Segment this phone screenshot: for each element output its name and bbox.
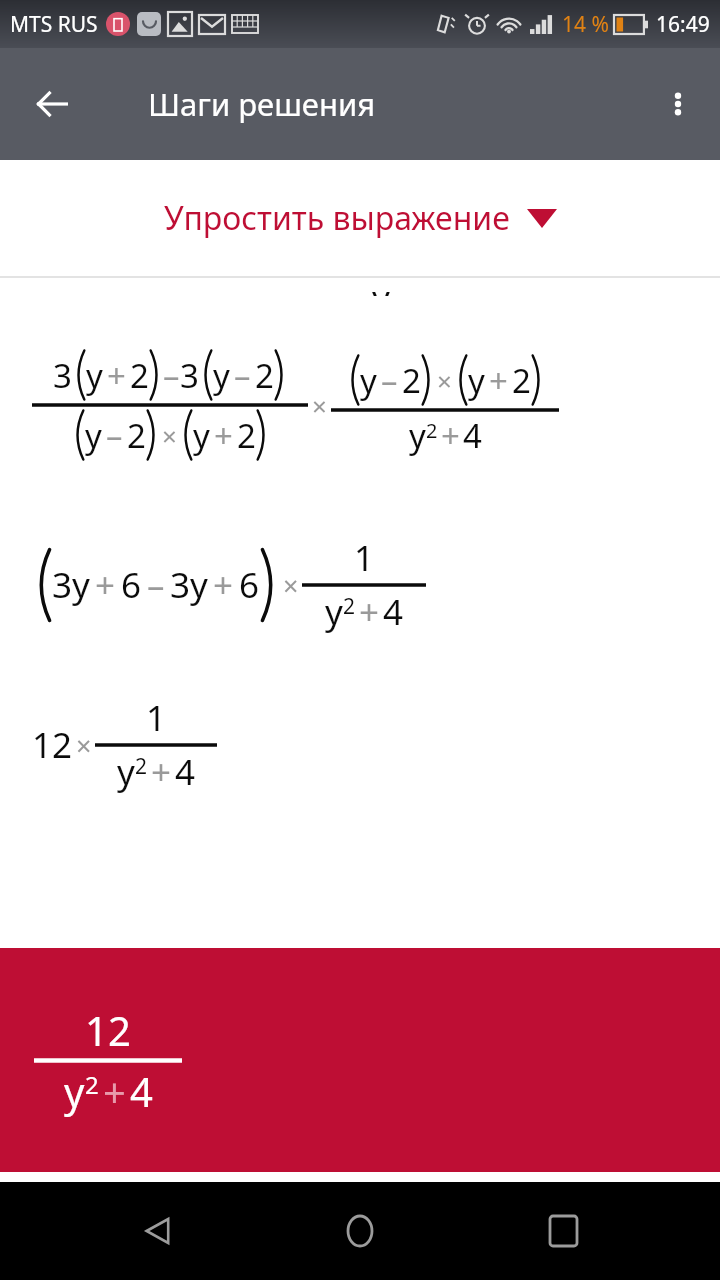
button[interactable]: Back	[20, 72, 84, 136]
staticText: 16:49	[656, 10, 710, 39]
staticText: y	[409, 413, 426, 458]
button[interactable]: More options	[650, 76, 706, 132]
staticText: y	[360, 358, 377, 403]
staticText: y	[117, 748, 135, 796]
staticText: 12	[32, 721, 73, 769]
staticText: +	[103, 1064, 126, 1118]
staticText: MTS RUS	[10, 10, 98, 39]
staticText: +	[441, 413, 460, 458]
staticText: –	[381, 358, 398, 403]
staticText: 2	[426, 417, 438, 444]
staticText: +	[489, 358, 508, 403]
staticText: 6	[239, 561, 260, 609]
staticText: y	[213, 353, 230, 398]
staticText: 1	[146, 694, 167, 742]
staticText: 2	[130, 353, 149, 398]
staticText: 6	[121, 561, 142, 609]
staticText: +	[214, 413, 233, 458]
staticText: 3	[53, 353, 72, 398]
staticText: 2	[135, 752, 148, 781]
staticText: +	[151, 748, 172, 796]
staticText: 3y	[170, 561, 208, 609]
staticText: –	[163, 353, 180, 398]
staticText: y	[64, 1064, 85, 1118]
button[interactable]: Упростить выражение	[0, 160, 720, 276]
staticText: y	[325, 588, 343, 636]
staticText: 12	[85, 1003, 131, 1057]
staticText: 4	[383, 588, 404, 636]
staticText: 2	[343, 592, 356, 621]
staticText: –	[234, 353, 251, 398]
staticText: +	[213, 561, 234, 609]
staticText: 2	[85, 1068, 99, 1101]
staticText: 1	[354, 534, 375, 582]
staticText: Шаги решения	[148, 83, 376, 125]
staticText: 2	[402, 358, 421, 403]
staticText: ×	[312, 388, 327, 423]
button[interactable]: Recent apps	[518, 1186, 608, 1276]
staticText: 14 %	[562, 10, 609, 39]
staticText: 3	[180, 353, 199, 398]
staticText: ×	[76, 727, 92, 764]
button[interactable]: 12	[0, 948, 720, 1172]
staticText: y	[86, 353, 103, 398]
staticText: –	[106, 413, 123, 458]
staticText: 2	[512, 358, 531, 403]
staticText: 2	[127, 413, 146, 458]
staticText: ×	[162, 418, 177, 453]
staticText: 2	[237, 413, 256, 458]
staticText: 2	[255, 353, 274, 398]
staticText: 4	[130, 1064, 153, 1118]
staticText: ×	[283, 567, 299, 604]
staticText: 4	[463, 413, 482, 458]
staticText: Упростить выражение	[164, 196, 510, 240]
staticText: 3y	[52, 561, 90, 609]
staticText: ×	[437, 363, 452, 398]
button[interactable]: Home	[315, 1186, 405, 1276]
staticText: +	[95, 561, 116, 609]
staticText: 4	[175, 748, 196, 796]
staticText: y	[85, 413, 102, 458]
staticText: –	[147, 561, 165, 609]
staticText: +	[359, 588, 380, 636]
staticText: y	[372, 274, 390, 296]
button[interactable]: Back	[113, 1186, 203, 1276]
staticText: y	[193, 413, 210, 458]
staticText: y	[468, 358, 485, 403]
staticText: +	[107, 353, 126, 398]
